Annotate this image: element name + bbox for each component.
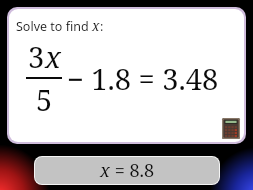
staticText: 3 [28, 37, 45, 76]
button[interactable]: Calculator [222, 118, 240, 139]
staticText: x [92, 17, 100, 35]
staticText: x [100, 158, 110, 183]
button[interactable]: Solve to find [9, 9, 244, 142]
staticText: 5 [36, 80, 53, 119]
staticText: − 1.8 = 3.48 [67, 59, 219, 98]
button[interactable]: x [35, 157, 219, 184]
staticText: Solve to find [16, 18, 92, 35]
staticText: : [100, 18, 104, 35]
staticText: x [45, 37, 61, 76]
staticText: = 8.8 [110, 158, 155, 183]
